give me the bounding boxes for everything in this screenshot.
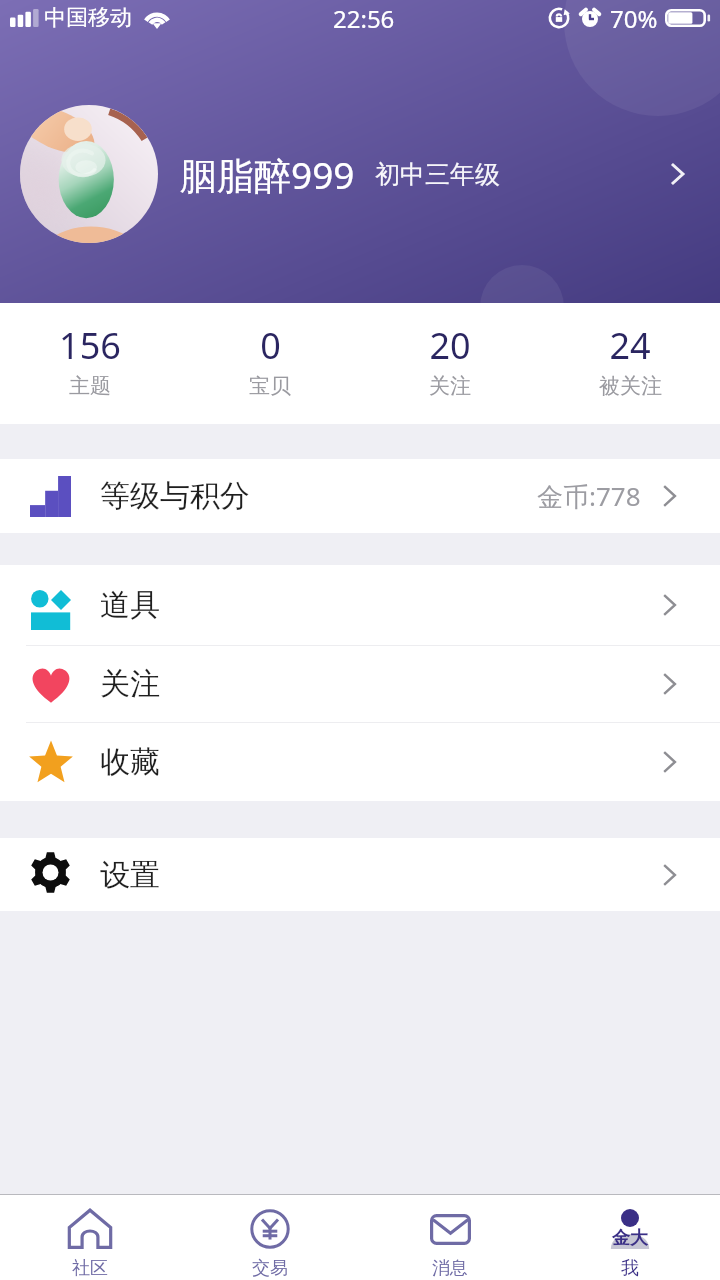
button[interactable]: 查看个人资料 bbox=[650, 146, 706, 202]
button[interactable]: 金大 bbox=[540, 1195, 720, 1280]
staticText: 金币:778 bbox=[537, 478, 641, 514]
staticText: 胭脂醉999 bbox=[180, 149, 355, 200]
staticText: 消息 bbox=[432, 1257, 468, 1280]
button[interactable]: 交易 bbox=[180, 1195, 360, 1280]
staticText: 156 bbox=[59, 321, 121, 370]
button[interactable]: 关注 bbox=[0, 646, 720, 722]
staticText: 道具 bbox=[100, 586, 160, 624]
staticText: 设置 bbox=[100, 856, 160, 894]
staticText: 宝贝 bbox=[249, 373, 291, 399]
staticText: 0 bbox=[260, 321, 281, 370]
button[interactable]: 24 bbox=[540, 303, 720, 424]
staticText: 关注 bbox=[429, 373, 471, 399]
staticText: 交易 bbox=[252, 1257, 288, 1280]
staticText: 初中三年级 bbox=[375, 159, 500, 190]
staticText: 20 bbox=[429, 321, 471, 370]
button[interactable]: 20 bbox=[360, 303, 540, 424]
button[interactable]: 0 bbox=[180, 303, 360, 424]
staticText: 金大 bbox=[612, 1227, 648, 1250]
button[interactable]: 道具 bbox=[0, 565, 720, 645]
staticText: 关注 bbox=[100, 665, 160, 703]
staticText: 24 bbox=[609, 321, 651, 370]
button[interactable]: 设置 bbox=[0, 838, 720, 911]
staticText: 社区 bbox=[72, 1257, 108, 1280]
button[interactable]: 头像 bbox=[20, 105, 158, 243]
staticText: 我 bbox=[621, 1257, 639, 1280]
staticText: 70% bbox=[610, 2, 658, 35]
button[interactable]: 等级与积分 bbox=[0, 459, 720, 533]
staticText: 22:56 bbox=[333, 2, 395, 35]
button[interactable]: 消息 bbox=[360, 1195, 540, 1280]
staticText: 被关注 bbox=[599, 373, 662, 399]
staticText: 主题 bbox=[69, 373, 111, 399]
button[interactable]: 社区 bbox=[0, 1195, 180, 1280]
staticText: 中国移动 bbox=[44, 4, 132, 32]
staticText: 收藏 bbox=[100, 743, 160, 781]
button[interactable]: 156 bbox=[0, 303, 180, 424]
button[interactable]: 收藏 bbox=[0, 723, 720, 801]
staticText: 等级与积分 bbox=[100, 477, 250, 515]
